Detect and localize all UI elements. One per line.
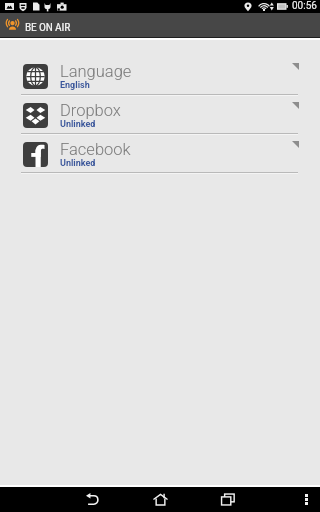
staticText: BE ON AIR bbox=[25, 20, 71, 33]
button[interactable]: Dropbox bbox=[0, 95, 320, 134]
button[interactable]: Recent apps bbox=[194, 487, 262, 512]
staticText: English bbox=[60, 80, 90, 91]
button[interactable]: Language bbox=[0, 56, 320, 95]
staticText: Dropbox bbox=[60, 101, 121, 120]
staticText: Unlinked bbox=[60, 119, 96, 130]
button[interactable]: Home bbox=[126, 487, 194, 512]
staticText: Language bbox=[60, 62, 132, 81]
button[interactable]: More options bbox=[292, 487, 320, 512]
staticText: Unlinked bbox=[60, 158, 96, 169]
staticText: 00:56 bbox=[292, 0, 317, 12]
button[interactable]: Back bbox=[58, 487, 126, 512]
staticText: Facebook bbox=[60, 140, 131, 159]
button[interactable]: Facebook bbox=[0, 134, 320, 173]
